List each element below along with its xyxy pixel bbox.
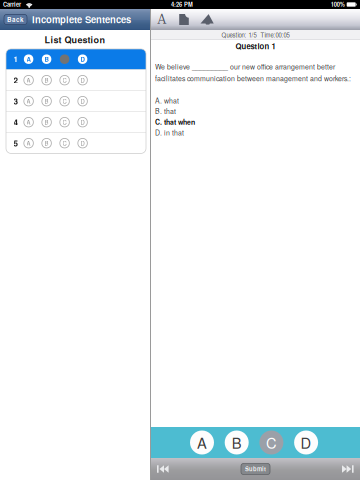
staticText: facilitates communication between manage… — [155, 73, 351, 83]
staticText: A — [157, 12, 166, 26]
staticText: C. that when — [155, 117, 195, 127]
staticText: A — [27, 118, 31, 126]
staticText: List Question — [44, 33, 105, 46]
staticText: 4:26 PM — [171, 0, 193, 9]
staticText: D — [81, 118, 85, 126]
staticText: B — [232, 432, 242, 453]
button[interactable]: D — [293, 429, 319, 455]
staticText: A — [197, 432, 207, 453]
staticText: A — [27, 97, 31, 105]
staticText: We believe _________ our new office arra… — [155, 62, 335, 71]
staticText: Submit — [245, 465, 266, 473]
button[interactable]: Previous question — [155, 462, 171, 476]
staticText: B — [45, 76, 49, 84]
button[interactable]: Next question — [340, 462, 356, 476]
staticText: B — [45, 118, 49, 126]
staticText: 100% — [331, 0, 345, 9]
button[interactable]: 1 — [6, 49, 146, 69]
staticText: D — [81, 76, 85, 84]
staticText: C — [63, 97, 67, 105]
button[interactable]: Submit — [241, 463, 270, 474]
button[interactable]: C — [258, 429, 284, 455]
button[interactable]: 2 — [6, 70, 146, 90]
staticText: D — [301, 432, 312, 453]
button[interactable]: A — [189, 429, 215, 455]
staticText: B — [45, 139, 49, 147]
staticText: A — [27, 139, 31, 147]
button[interactable]: 5 — [6, 133, 146, 153]
staticText: A — [27, 76, 31, 84]
button[interactable]: Reading passage — [178, 12, 190, 26]
staticText: 1 — [14, 53, 18, 65]
staticText: D. in that — [155, 128, 184, 137]
staticText: A. what — [155, 95, 179, 105]
staticText: C — [63, 118, 67, 126]
staticText: Question 1 — [235, 40, 275, 52]
staticText: C — [266, 432, 277, 453]
staticText: D — [81, 97, 85, 105]
staticText: Carrier — [3, 0, 21, 9]
staticText: D — [81, 139, 85, 147]
staticText: B. that — [155, 106, 176, 116]
staticText: B — [45, 97, 49, 105]
staticText: B — [45, 55, 49, 64]
staticText: D — [81, 55, 85, 64]
staticText: Back — [7, 15, 24, 24]
staticText: 2 — [14, 74, 18, 86]
button[interactable]: 4 — [6, 112, 146, 132]
button[interactable]: Font size — [156, 12, 168, 26]
button[interactable]: 3 — [6, 91, 146, 111]
button[interactable]: Back — [4, 14, 27, 24]
staticText: Question: 1/5 Time:00:05 — [221, 31, 289, 39]
staticText: Incomplete Sentences — [32, 13, 131, 26]
staticText: C — [63, 76, 67, 84]
staticText: 5 — [14, 137, 18, 149]
button[interactable]: B — [224, 429, 250, 455]
staticText: 3 — [14, 95, 18, 107]
staticText: 4 — [14, 116, 18, 128]
staticText: C — [63, 139, 67, 147]
button[interactable]: Mark question — [200, 12, 214, 26]
staticText: A — [27, 55, 31, 64]
